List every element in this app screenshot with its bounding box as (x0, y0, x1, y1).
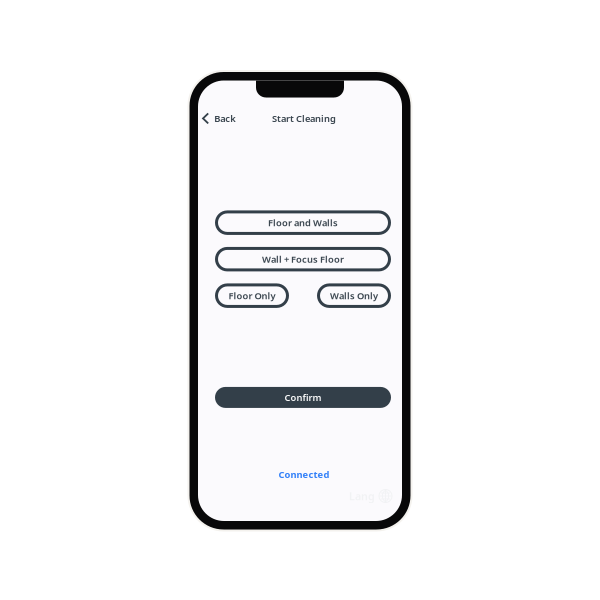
staticText: Back (214, 112, 235, 125)
button[interactable]: Connected (198, 468, 402, 481)
button[interactable]: Back (198, 107, 241, 129)
button[interactable]: Confirm (215, 387, 391, 408)
staticText: Walls Only (330, 289, 378, 302)
staticText: Floor Only (228, 289, 275, 302)
staticText: Lang (349, 489, 375, 503)
button[interactable]: Floor Only (215, 283, 289, 308)
staticText: Connected (278, 468, 329, 481)
button[interactable]: Floor and Walls (215, 210, 391, 235)
staticText: Start Cleaning (272, 112, 336, 125)
staticText: Confirm (284, 391, 321, 404)
staticText: Wall + Focus Floor (262, 253, 344, 265)
button[interactable]: Wall + Focus Floor (215, 247, 391, 271)
button[interactable]: Walls Only (317, 283, 391, 308)
staticText: Floor and Walls (268, 216, 338, 229)
